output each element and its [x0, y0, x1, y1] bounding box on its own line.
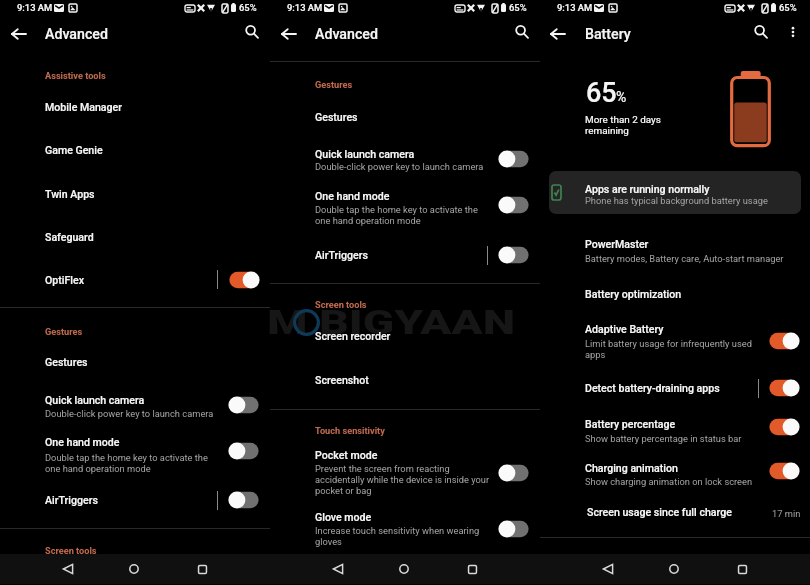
staticText: Screen tools [315, 299, 367, 310]
button[interactable]: Back [8, 23, 30, 45]
staticText: M BIGYAAN [267, 303, 516, 342]
staticText: Assistive tools [45, 70, 106, 81]
button[interactable]: Off [497, 148, 531, 170]
staticText: Show charging animation on lock screen [585, 476, 753, 487]
staticText: Twin Apps [45, 188, 95, 200]
button[interactable]: More options [782, 21, 804, 43]
button[interactable]: Back [326, 557, 350, 581]
staticText: Advanced [45, 26, 108, 43]
button[interactable]: Search [511, 21, 533, 43]
button[interactable]: Off [497, 518, 531, 540]
staticText: Battery modes, Battery care, Auto-start … [585, 253, 784, 264]
staticText: Prevent the screen from reacting acciden… [315, 463, 490, 496]
staticText: Mobile Manager [45, 101, 122, 113]
staticText: One hand mode [315, 190, 390, 202]
staticText: Safeguard [45, 231, 94, 243]
button[interactable]: Back [278, 23, 300, 45]
button[interactable]: Back [596, 557, 620, 581]
staticText: Gestures [315, 79, 353, 90]
staticText: 65% [509, 2, 527, 13]
staticText: Detect battery-draining apps [585, 382, 720, 394]
staticText: Double-click power key to launch camera [45, 408, 214, 419]
staticText: 9:13 AM [287, 2, 323, 13]
staticText: 9:13 AM [17, 2, 53, 13]
button[interactable]: On [767, 330, 801, 352]
staticText: AirTriggers [315, 249, 368, 261]
staticText: One hand mode [45, 436, 120, 448]
staticText: Phone has typical background battery usa… [585, 195, 768, 206]
staticText: AirTriggers [45, 494, 98, 506]
staticText: Double-click power key to launch camera [315, 161, 484, 172]
button[interactable]: Back [56, 557, 80, 581]
staticText: 17 min [772, 508, 801, 519]
staticText: Charging animation [585, 462, 678, 474]
button[interactable]: Off [497, 244, 531, 266]
staticText: Screenshot [315, 374, 369, 386]
staticText: Gestures [315, 111, 358, 123]
button[interactable]: Recents [190, 557, 214, 581]
staticText: Gestures [45, 356, 88, 368]
staticText: Increase touch sensitivity when wearing … [315, 525, 480, 547]
button[interactable]: Recents [460, 557, 484, 581]
staticText: Quick launch camera [45, 394, 145, 406]
staticText: Battery percentage [585, 418, 676, 430]
staticText: Adaptive Battery [585, 323, 664, 335]
button[interactable]: Home [392, 557, 416, 581]
staticText: Game Genie [45, 144, 103, 156]
button[interactable] [549, 171, 801, 214]
staticText: Double tap the home key to activate the … [45, 452, 208, 474]
staticText: Quick launch camera [315, 148, 415, 160]
staticText: Limit battery usage for infrequently use… [585, 338, 752, 360]
staticText: % [616, 89, 627, 106]
button[interactable]: Off [497, 194, 531, 216]
staticText: Glove mode [315, 511, 372, 523]
staticText: Double tap the home key to activate the … [315, 204, 478, 226]
staticText: 65% [239, 2, 257, 13]
staticText: Screen tools [45, 545, 97, 556]
button[interactable]: Home [662, 557, 686, 581]
button[interactable]: Search [241, 21, 263, 43]
staticText: OptiFlex [45, 274, 85, 286]
button[interactable]: Home [122, 557, 146, 581]
button[interactable]: Off [227, 394, 261, 416]
staticText: 65% [779, 2, 797, 13]
button[interactable]: Off [227, 440, 261, 462]
staticText: Screen usage since full charge [587, 506, 732, 518]
staticText: 9:13 AM [557, 2, 593, 13]
staticText: 65 [586, 77, 617, 109]
staticText: Screen recorder [315, 330, 391, 342]
button[interactable]: Off [227, 489, 261, 511]
button[interactable]: On [227, 269, 261, 291]
button[interactable]: Back [547, 23, 569, 45]
staticText: Advanced [315, 26, 378, 43]
staticText: Battery optimization [585, 288, 682, 300]
staticText: Gestures [45, 326, 83, 337]
staticText: Touch sensitivity [315, 425, 385, 436]
button[interactable]: On [767, 416, 801, 438]
button[interactable]: Off [497, 462, 531, 484]
button[interactable]: Recents [730, 557, 754, 581]
button[interactable]: On [767, 460, 801, 482]
staticText: More than 2 days remaining [585, 114, 661, 136]
button[interactable]: Search [750, 21, 772, 43]
button[interactable]: On [767, 377, 801, 399]
staticText: Apps are running normally [585, 183, 710, 195]
staticText: Battery [585, 26, 631, 43]
staticText: Show battery percentage in status bar [585, 433, 742, 444]
staticText: Pocket mode [315, 449, 378, 461]
staticText: PowerMaster [585, 238, 649, 250]
